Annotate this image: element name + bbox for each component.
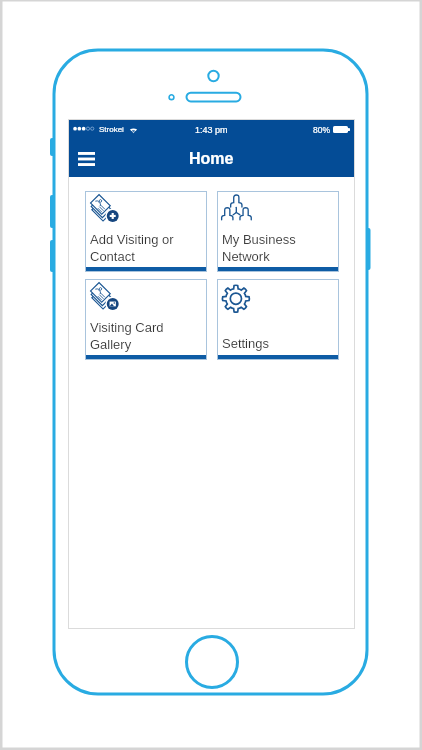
- button[interactable]: My Business Network: [217, 191, 339, 272]
- staticText: Visiting Card Gallery: [90, 320, 164, 351]
- staticText: My Business Network: [222, 232, 296, 263]
- button[interactable]: Visiting Card Gallery: [85, 279, 207, 360]
- button[interactable]: Menu: [68, 141, 104, 177]
- button[interactable]: Add Visiting or Contact: [85, 191, 207, 272]
- staticText: Settings: [222, 336, 269, 351]
- staticText: Add Visiting or Contact: [90, 232, 174, 263]
- staticText: 80%: [313, 125, 331, 134]
- button[interactable]: Settings: [217, 279, 339, 360]
- staticText: Strokei: [99, 125, 124, 134]
- staticText: Home: [189, 150, 234, 168]
- staticText: 1:43 pm: [195, 125, 228, 135]
